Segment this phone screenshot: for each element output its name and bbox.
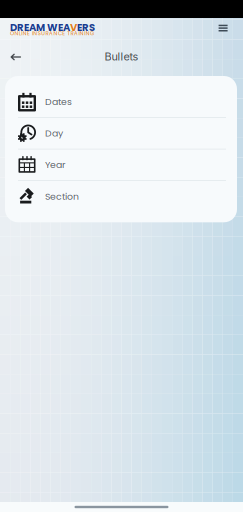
- staticText: V: [70, 20, 77, 34]
- staticText: ONLINE INSURANCE TRAINING: [10, 30, 94, 37]
- button[interactable]: Section: [5, 181, 237, 212]
- staticText: Day: [45, 127, 63, 140]
- button[interactable]: Day: [5, 118, 237, 149]
- staticText: Year: [45, 158, 65, 171]
- button[interactable]: Back: [4, 47, 26, 67]
- staticText: ERS: [77, 20, 95, 34]
- staticText: Dates: [45, 95, 72, 108]
- button[interactable]: Year: [5, 149, 237, 181]
- button[interactable]: Dates: [5, 86, 237, 118]
- staticText: Bullets: [104, 50, 138, 63]
- staticText: DREAM WEA: [10, 20, 70, 34]
- staticText: Section: [45, 190, 79, 203]
- button[interactable]: Menu: [212, 19, 235, 38]
